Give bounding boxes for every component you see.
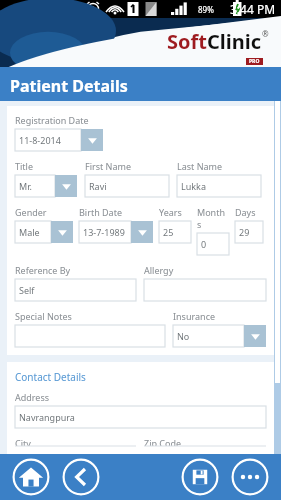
button[interactable]: 13-7-1989: [79, 221, 153, 243]
button[interactable]: Mr.: [15, 175, 77, 197]
button[interactable]: 29: [235, 221, 263, 243]
staticText: Allergy: [144, 264, 174, 276]
button[interactable]: [15, 325, 165, 347]
staticText: Last Name: [177, 160, 223, 172]
staticText: 29: [239, 226, 250, 238]
staticText: Self: [19, 284, 35, 296]
staticText: Years: [159, 206, 182, 218]
staticText: ®: [262, 28, 269, 39]
staticText: Patient Details: [10, 75, 128, 97]
button[interactable]: Back: [62, 458, 100, 496]
button[interactable]: Ravi: [85, 175, 169, 197]
staticText: 11-8-2014: [19, 134, 61, 146]
staticText: Registration Date: [15, 114, 89, 126]
button[interactable]: Home: [12, 458, 50, 496]
staticText: Lukka: [181, 180, 206, 192]
staticText: 3:44 PM: [230, 1, 276, 17]
staticText: Clinic: [207, 28, 262, 55]
staticText: Zip Code: [144, 437, 182, 446]
staticText: Gender: [15, 206, 47, 218]
staticText: City: [15, 437, 31, 446]
staticText: Male: [19, 226, 40, 238]
button[interactable]: No: [173, 325, 266, 347]
staticText: Special Notes: [15, 310, 72, 322]
staticText: Insurance: [173, 310, 216, 322]
staticText: Address: [15, 391, 50, 403]
staticText: Days: [235, 206, 256, 218]
staticText: 25: [163, 226, 174, 238]
button[interactable]: [144, 279, 266, 301]
staticText: Mr.: [19, 180, 32, 192]
button[interactable]: 11-8-2014: [15, 129, 103, 151]
staticText: PRO: [249, 58, 260, 65]
staticText: No: [177, 330, 190, 342]
button[interactable]: Lukka: [177, 175, 261, 197]
staticText: Birth Date: [79, 206, 122, 218]
staticText: Ravi: [89, 180, 107, 192]
staticText: First Name: [85, 160, 131, 172]
staticText: Soft: [167, 28, 207, 55]
button[interactable]: Save: [181, 458, 219, 496]
staticText: Contact Details: [15, 370, 86, 384]
staticText: 0: [201, 238, 207, 250]
staticText: Navrangpura: [19, 411, 75, 423]
button[interactable]: 0: [197, 233, 229, 255]
button[interactable]: Navrangpura: [15, 406, 266, 428]
button[interactable]: 25: [159, 221, 191, 243]
button[interactable]: Self: [15, 279, 136, 301]
staticText: 13-7-1989: [83, 226, 125, 238]
staticText: Months: [197, 206, 229, 230]
button[interactable]: Male: [15, 221, 73, 243]
staticText: 89%: [198, 4, 214, 15]
staticText: Title: [15, 160, 33, 172]
staticText: Reference By: [15, 264, 71, 276]
button[interactable]: More options: [231, 458, 269, 496]
